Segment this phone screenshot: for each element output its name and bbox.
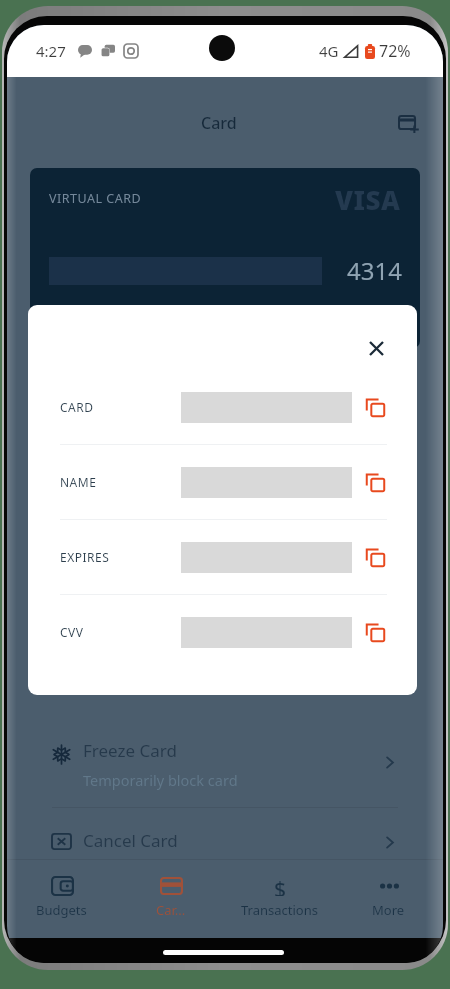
staticText: Temporarily block card (83, 770, 238, 790)
button[interactable]: CARD (28, 370, 417, 444)
button[interactable]: Add card (392, 108, 424, 140)
staticText: Transactions (241, 901, 318, 919)
staticText: 4314 (347, 254, 402, 287)
other: Copy NAME (362, 469, 388, 495)
button[interactable]: Cancel Card (7, 808, 443, 859)
button[interactable]: Budgets (7, 860, 116, 938)
other: Copy CVV (362, 619, 388, 645)
staticText: CVV (60, 624, 181, 640)
button[interactable]: Car... (116, 860, 225, 938)
staticText: 72% (379, 40, 411, 62)
staticText: VIRTUAL CARD (49, 190, 142, 207)
staticText: Card (201, 112, 237, 134)
button[interactable]: CVV (28, 595, 417, 669)
staticText: 4G (319, 41, 339, 61)
other: Copy CARD (362, 394, 388, 420)
staticText: Car... (156, 901, 186, 919)
button[interactable]: $ (225, 860, 334, 938)
other: Copy EXPIRES (362, 544, 388, 570)
staticText: Cancel Card (83, 829, 178, 852)
button[interactable]: Freeze Card (7, 730, 443, 807)
button[interactable]: More (334, 860, 443, 938)
button[interactable]: NAME (28, 445, 417, 519)
button[interactable]: Close (362, 334, 390, 362)
staticText: VISA (335, 182, 401, 217)
button[interactable]: EXPIRES (28, 520, 417, 594)
staticText: Budgets (36, 901, 87, 919)
staticText: 4:27 (36, 41, 66, 61)
staticText: NAME (60, 474, 181, 490)
staticText: $ (274, 875, 287, 896)
staticText: More (372, 901, 405, 919)
staticText: Freeze Card (83, 739, 177, 762)
staticText: CARD (60, 399, 181, 415)
staticText: EXPIRES (60, 549, 181, 565)
